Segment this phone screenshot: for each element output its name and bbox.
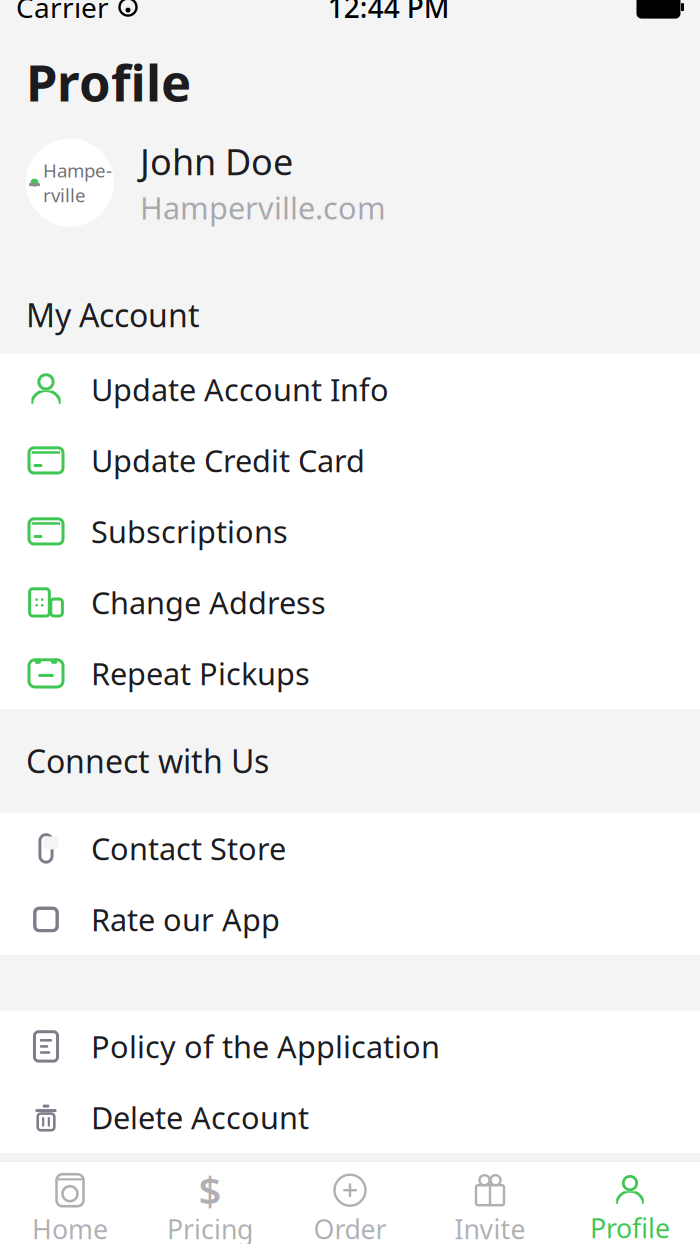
button[interactable]: Delete Account: [0, 1082, 700, 1153]
staticText: $: [198, 1164, 221, 1217]
button[interactable]: Policy of the Application: [0, 1011, 700, 1082]
staticText: Connect with Us: [26, 740, 269, 782]
button[interactable]: Order: [280, 1162, 420, 1244]
button[interactable]: Update Account Info: [0, 354, 700, 425]
staticText: Contact Store: [91, 828, 286, 869]
staticText: Hamperville: [43, 158, 112, 207]
staticText: Policy of the Application: [91, 1026, 440, 1067]
button[interactable]: Home: [0, 1162, 140, 1244]
button[interactable]: Invite: [420, 1162, 560, 1244]
staticText: Update Account Info: [91, 369, 389, 410]
staticText: Change Address: [91, 582, 326, 623]
staticText: 12:44 PM: [328, 0, 450, 26]
button[interactable]: Profile: [560, 1162, 700, 1244]
staticText: Profile: [590, 1210, 670, 1244]
button[interactable]: Rate our App: [0, 884, 700, 955]
staticText: Repeat Pickups: [91, 653, 310, 694]
staticText: Delete Account: [91, 1097, 309, 1138]
staticText: Carrier: [16, 0, 109, 26]
staticText: Update Credit Card: [91, 440, 365, 481]
button[interactable]: Contact Store: [0, 813, 700, 884]
staticText: Rate our App: [91, 899, 280, 940]
staticText: John Doe: [140, 137, 293, 185]
button[interactable]: Subscriptions: [0, 496, 700, 567]
button[interactable]: Change Address: [0, 567, 700, 638]
staticText: Order: [313, 1211, 386, 1244]
staticText: Home: [32, 1211, 108, 1244]
staticText: Invite: [454, 1211, 525, 1244]
staticText: Pricing: [167, 1211, 253, 1244]
button[interactable]: Repeat Pickups: [0, 638, 700, 709]
button[interactable]: Update Credit Card: [0, 425, 700, 496]
staticText: Subscriptions: [91, 511, 288, 552]
staticText: My Account: [26, 294, 200, 336]
staticText: Hamperville.com: [140, 187, 386, 228]
button[interactable]: $: [140, 1162, 280, 1244]
staticText: Profile: [26, 48, 191, 115]
